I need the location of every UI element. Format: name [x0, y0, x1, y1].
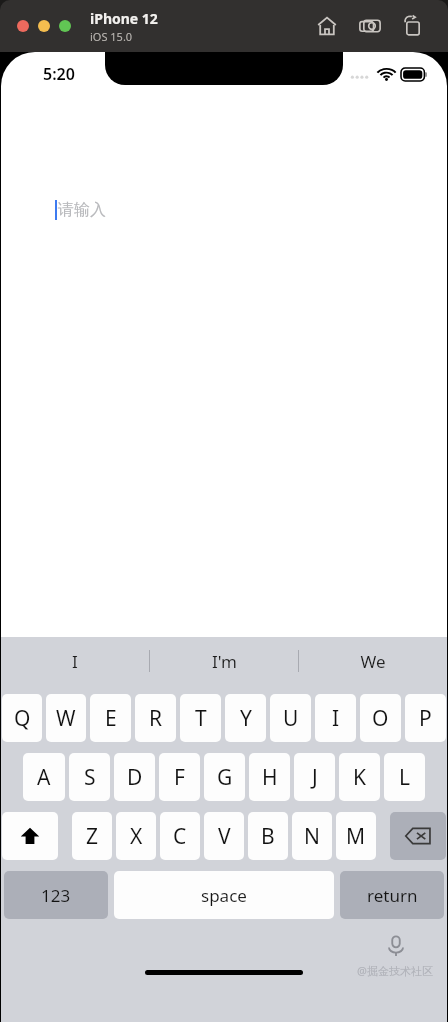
button[interactable]: H — [249, 753, 290, 801]
staticText: A — [37, 763, 51, 792]
button[interactable]: I — [315, 694, 356, 742]
staticText: Z — [86, 822, 99, 851]
staticText: Q — [14, 704, 31, 733]
button[interactable]: V — [204, 812, 244, 860]
staticText: H — [262, 763, 278, 792]
staticText: space — [201, 884, 247, 907]
staticText: R — [149, 704, 163, 733]
button[interactable]: K — [339, 753, 380, 801]
staticText: J — [312, 763, 318, 792]
button[interactable]: Shift — [2, 812, 58, 860]
button[interactable]: M — [336, 812, 376, 860]
staticText: S — [84, 763, 96, 792]
staticText: C — [173, 822, 187, 851]
staticText: iOS 15.0 — [90, 29, 133, 44]
button[interactable]: I'm — [150, 637, 298, 685]
button[interactable]: Dictation — [379, 929, 413, 963]
staticText: E — [105, 704, 117, 733]
button[interactable]: J — [294, 753, 335, 801]
button[interactable]: A — [23, 753, 65, 801]
button[interactable] — [38, 20, 50, 32]
button[interactable]: T — [180, 694, 221, 742]
staticText: 123 — [41, 884, 71, 907]
button[interactable]: Y — [225, 694, 266, 742]
staticText: L — [399, 763, 411, 792]
staticText: Y — [240, 704, 252, 733]
button[interactable]: N — [292, 812, 332, 860]
staticText: X — [130, 822, 143, 851]
staticText: @掘金技术社区 — [357, 963, 433, 978]
staticText: 请输入 — [58, 200, 106, 220]
staticText: K — [353, 763, 366, 792]
button[interactable]: Rotate — [396, 9, 430, 43]
button[interactable]: L — [384, 753, 425, 801]
button[interactable]: S — [69, 753, 110, 801]
button[interactable]: Home — [310, 9, 344, 43]
staticText: I — [332, 704, 340, 733]
button[interactable]: Q — [2, 694, 42, 742]
button[interactable]: U — [270, 694, 311, 742]
button[interactable]: E — [90, 694, 131, 742]
staticText: I — [72, 650, 78, 673]
staticText: V — [218, 822, 231, 851]
staticText: W — [56, 704, 76, 733]
staticText: M — [346, 822, 366, 851]
button[interactable]: I — [1, 637, 149, 685]
staticText: F — [174, 763, 185, 792]
button[interactable] — [59, 20, 71, 32]
button[interactable]: 123 — [4, 871, 108, 919]
button[interactable] — [17, 20, 29, 32]
staticText: return — [367, 884, 418, 907]
staticText: G — [217, 763, 233, 792]
staticText: D — [127, 763, 143, 792]
staticText: 5:20 — [43, 63, 75, 85]
button[interactable]: Backspace — [390, 812, 446, 860]
button[interactable]: P — [405, 694, 446, 742]
button[interactable]: space — [114, 871, 334, 919]
staticText: B — [261, 822, 275, 851]
button[interactable]: return — [340, 871, 444, 919]
button[interactable]: D — [114, 753, 155, 801]
button[interactable]: X — [116, 812, 156, 860]
button[interactable]: O — [360, 694, 401, 742]
staticText: P — [419, 704, 432, 733]
button[interactable]: We — [299, 637, 447, 685]
staticText: I'm — [212, 650, 237, 673]
staticText: T — [195, 704, 207, 733]
staticText: N — [304, 822, 320, 851]
staticText: We — [360, 650, 386, 673]
button[interactable]: B — [248, 812, 288, 860]
button[interactable]: W — [46, 694, 86, 742]
button[interactable]: Z — [72, 812, 112, 860]
button[interactable]: F — [159, 753, 200, 801]
button[interactable]: G — [204, 753, 245, 801]
button[interactable]: R — [135, 694, 176, 742]
staticText: U — [283, 704, 299, 733]
button[interactable]: 请输入 — [1, 192, 447, 228]
button[interactable]: Screenshot — [353, 9, 387, 43]
staticText: iPhone 12 — [90, 9, 158, 28]
button[interactable]: C — [160, 812, 200, 860]
staticText: O — [372, 704, 389, 733]
